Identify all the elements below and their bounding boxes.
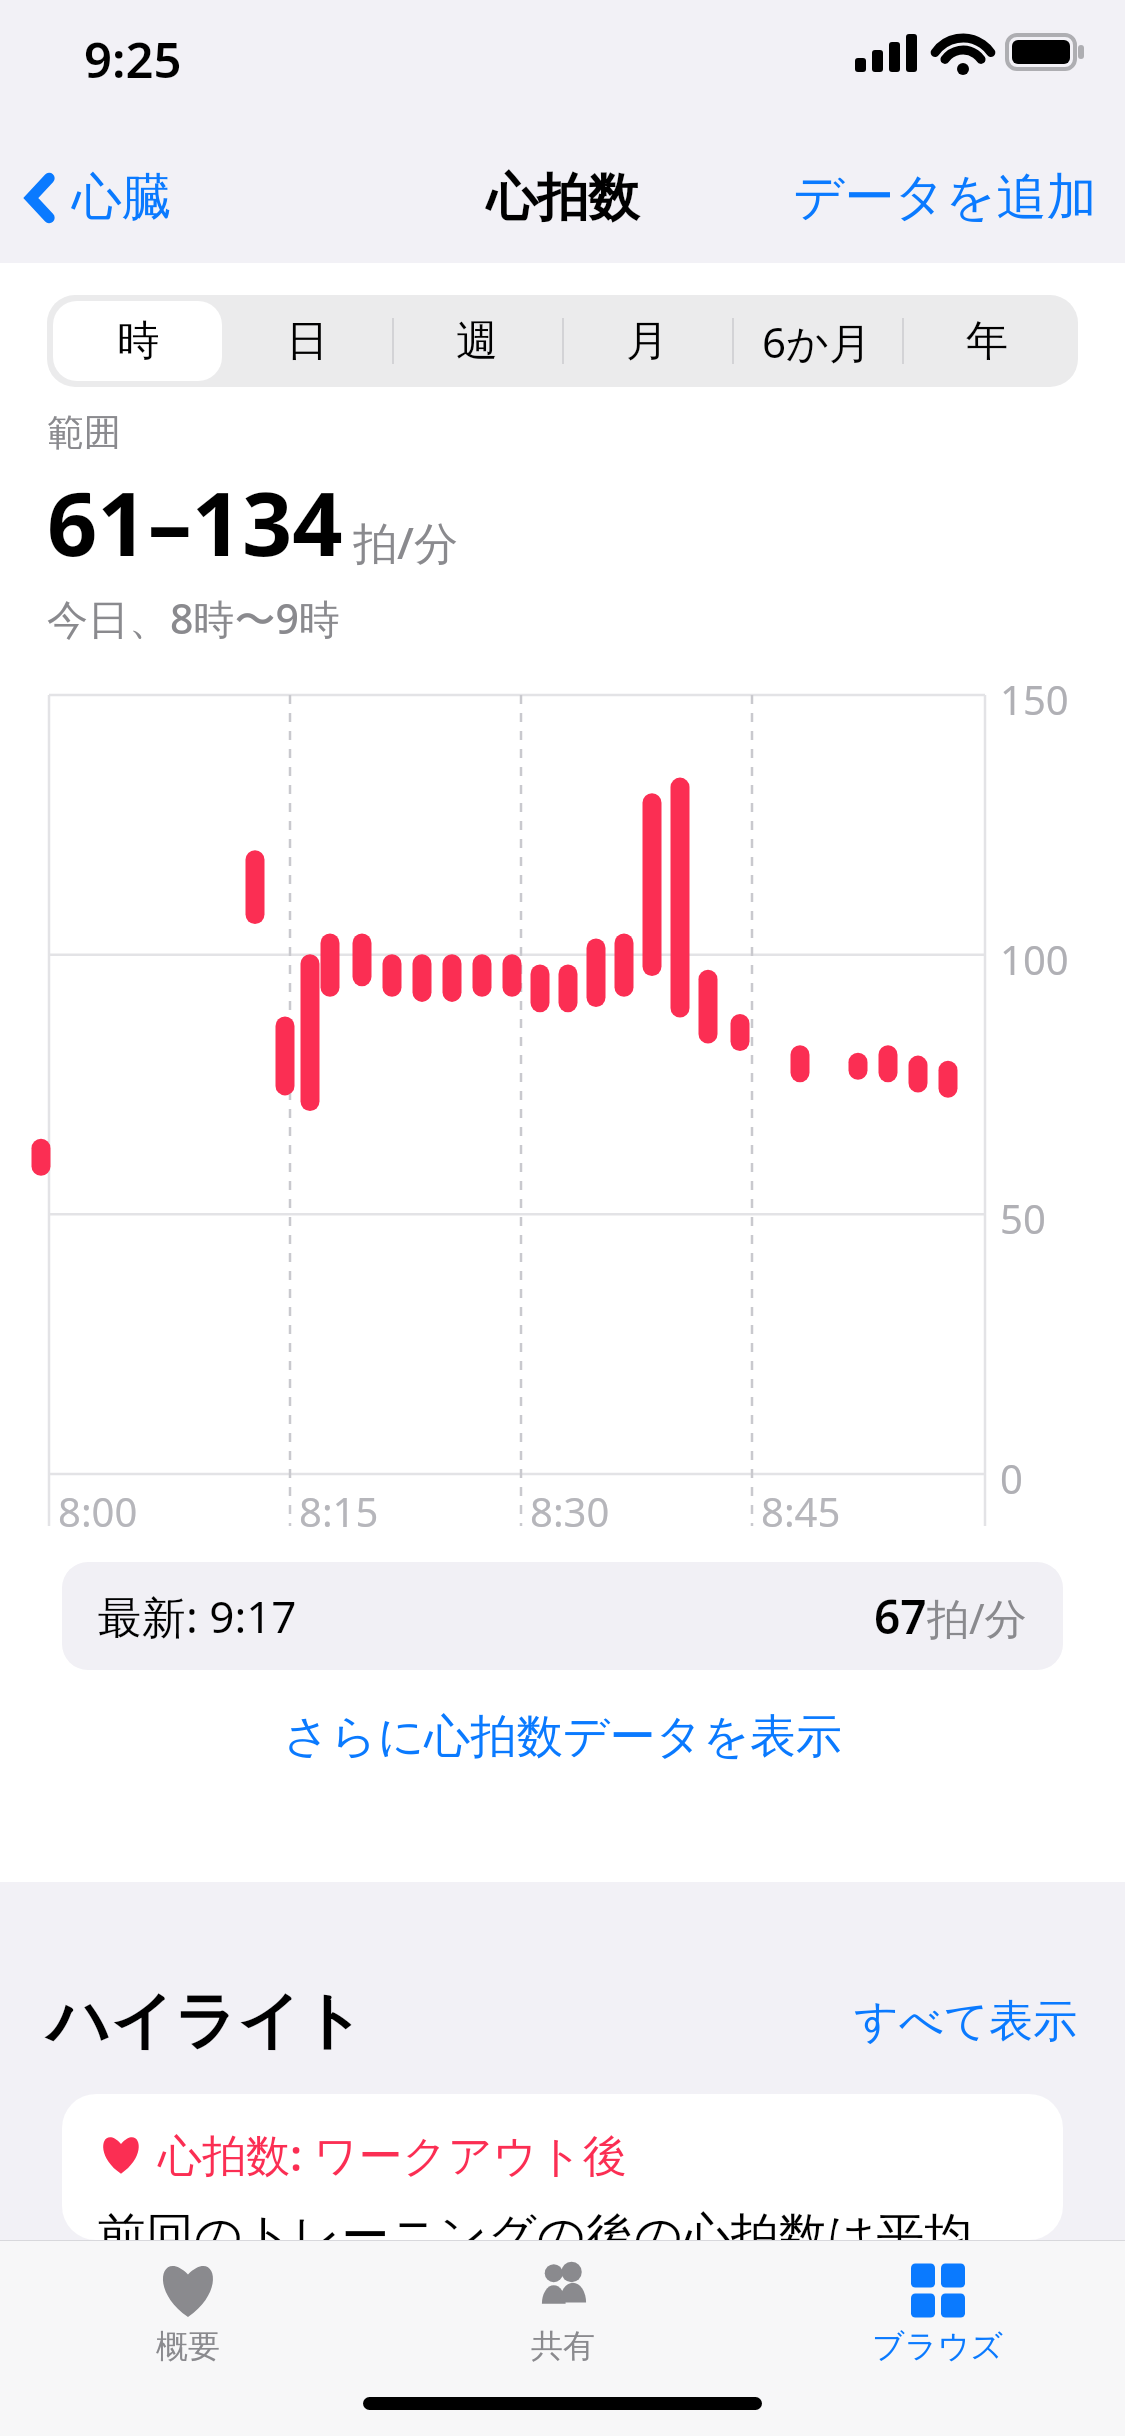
button[interactable]: 時 [53,301,222,381]
button[interactable]: 月 [562,301,732,381]
staticText: 最新: 9:17 [98,1586,297,1646]
staticText: ブラウズ [872,2326,1003,2366]
button[interactable]: 概要 [0,2254,375,2366]
staticText: 日 [286,315,328,368]
staticText: 100 [1000,932,1069,986]
button[interactable]: 週 [392,301,562,381]
staticText: 61–134 [47,462,343,582]
staticText: 心拍数: ワークアウト後 [158,2124,627,2184]
button[interactable]: ブラウズ [750,2254,1125,2366]
button[interactable]: 日 [222,301,392,381]
staticText: 拍/分 [353,512,458,572]
staticText: 年 [966,315,1008,368]
staticText: 150 [1000,672,1069,726]
staticText: 概要 [156,2326,220,2366]
staticText: 週 [456,315,498,368]
staticText: 0 [1000,1451,1023,1505]
button[interactable]: 6か月 [732,301,902,381]
staticText: 8:30 [530,1484,610,1538]
button[interactable]: データを追加 [793,166,1097,229]
button[interactable]: 共有 [375,2254,750,2366]
staticText: 67 [874,1585,927,1648]
staticText: 範囲 [47,409,121,456]
other: ブラウズ [905,2260,971,2320]
button[interactable]: 最新: 9:17 [62,1562,1063,1670]
staticText: 前回のトレーニングの後の心拍数は平均 [98,2206,973,2240]
button[interactable]: すべて表示 [854,1994,1078,2049]
staticText: 月 [626,315,668,368]
staticText: 6か月 [762,313,872,370]
staticText: 今日、8時〜9時 [47,590,340,646]
staticText: さらに心拍数データを表示 [283,1708,842,1766]
button[interactable]: 年 [902,301,1072,381]
staticText: 8:00 [58,1484,138,1538]
staticText: 心拍数 [486,166,639,230]
staticText: 8:45 [761,1484,841,1538]
staticText: 拍/分 [927,1589,1027,1646]
staticText: 9:25 [84,26,182,93]
staticText: 時 [117,315,159,368]
staticText: 共有 [531,2326,595,2366]
staticText: 50 [1000,1191,1046,1245]
staticText: 心臓 [72,166,172,229]
staticText: ハイライト [47,1982,365,2060]
other: 共有 [530,2260,596,2320]
staticText: 8:15 [299,1484,379,1538]
other: 概要 [155,2260,221,2320]
button[interactable]: さらに心拍数データを表示 [0,1708,1125,1766]
button[interactable]: 心拍数: ワークアウト後 [62,2094,1063,2240]
button[interactable]: 心臓 [24,166,172,229]
